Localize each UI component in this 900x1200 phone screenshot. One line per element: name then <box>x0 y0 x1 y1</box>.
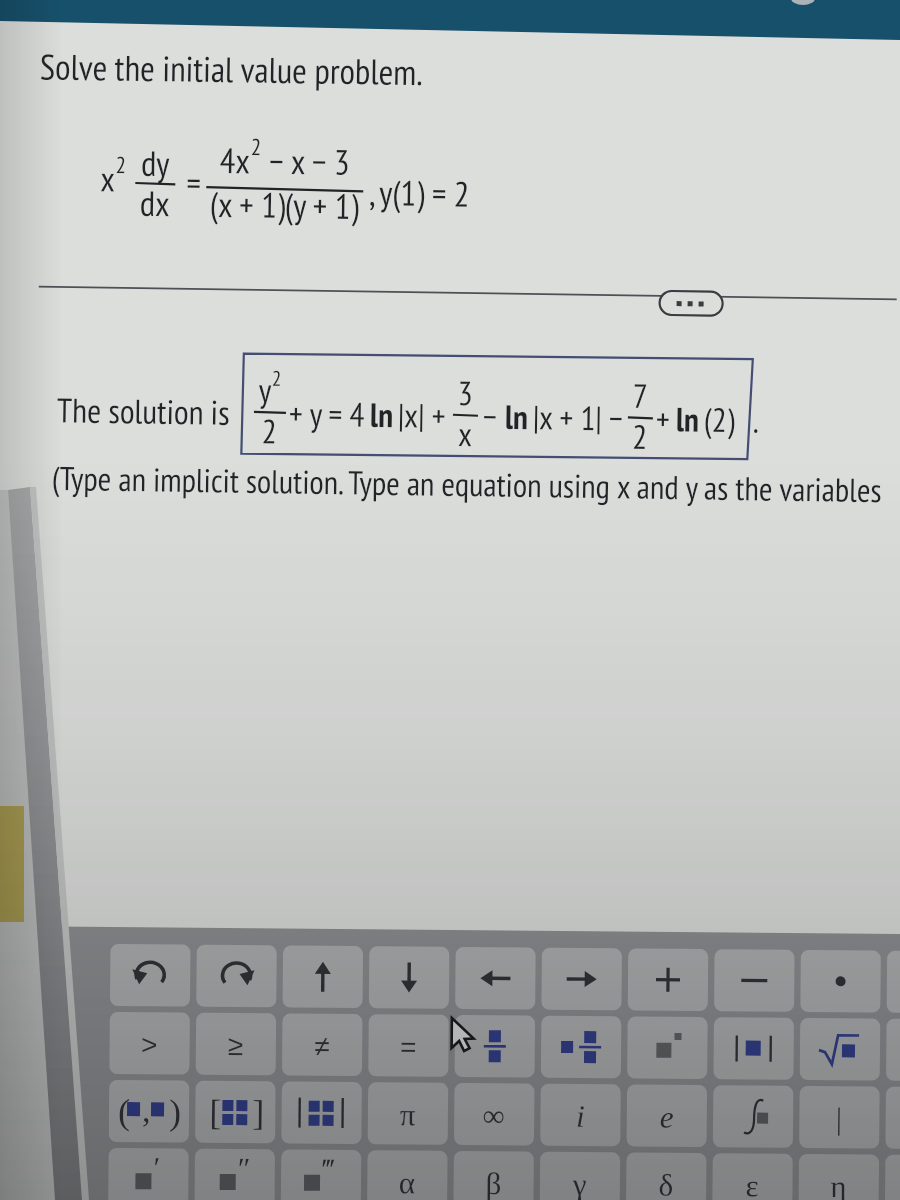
button[interactable]: Math problem worksheet <box>0 0 900 1200</box>
